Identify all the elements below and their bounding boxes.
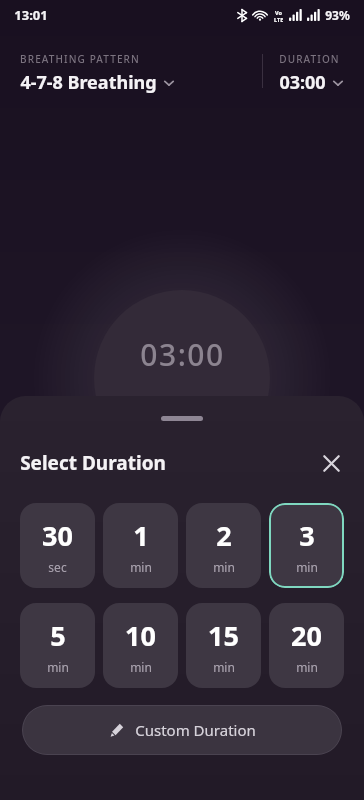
staticText: 15 xyxy=(208,617,239,654)
staticText: min xyxy=(213,659,235,675)
staticText: min xyxy=(296,559,318,575)
staticText: 13:01 xyxy=(14,6,48,24)
button[interactable]: 5 xyxy=(20,603,95,688)
staticText: 3 xyxy=(299,517,315,554)
staticText: DURATION xyxy=(279,52,340,66)
staticText: 4-7-8 Breathing xyxy=(20,70,157,95)
staticText: 30 xyxy=(42,517,73,554)
button[interactable]: Close xyxy=(314,446,348,480)
staticText: 93% xyxy=(325,7,350,23)
staticText: Custom Duration xyxy=(135,720,256,740)
button[interactable]: 15 xyxy=(186,603,261,688)
button[interactable]: 20 xyxy=(269,603,344,688)
staticText: 03:00 xyxy=(279,70,326,95)
staticText: min xyxy=(130,659,152,675)
staticText: 5 xyxy=(50,617,66,654)
button[interactable]: 10 xyxy=(103,603,178,688)
button[interactable]: 30 xyxy=(20,503,95,588)
staticText: Select Duration xyxy=(20,450,166,476)
button[interactable]: Custom Duration xyxy=(22,705,342,755)
staticText: sec xyxy=(48,559,67,575)
button[interactable]: DURATION xyxy=(279,52,344,95)
staticText: 03:00 xyxy=(140,334,225,375)
staticText: 20 xyxy=(291,617,322,654)
staticText: 10 xyxy=(125,617,156,654)
button[interactable]: 2 xyxy=(186,503,261,588)
button[interactable]: 3 xyxy=(269,503,344,588)
button[interactable]: BREATHING PATTERN xyxy=(20,52,262,95)
staticText: min xyxy=(47,659,69,675)
staticText: min xyxy=(213,559,235,575)
staticText: min xyxy=(130,559,152,575)
staticText: min xyxy=(296,659,318,675)
staticText: LTE xyxy=(274,16,284,22)
staticText: 1 xyxy=(133,517,149,554)
button[interactable]: 1 xyxy=(103,503,178,588)
staticText: 2 xyxy=(216,517,232,554)
staticText: Vo xyxy=(275,9,282,16)
staticText: BREATHING PATTERN xyxy=(20,52,140,66)
